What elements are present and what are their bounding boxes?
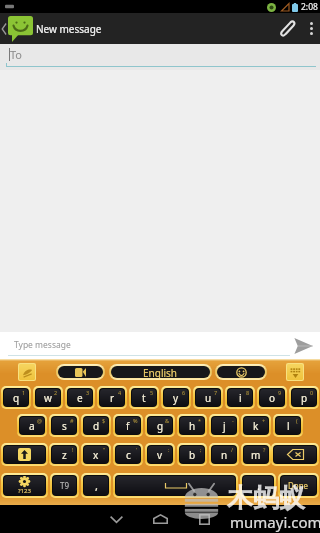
staticText: ? <box>263 446 266 453</box>
staticText: * <box>198 417 202 424</box>
staticText: i <box>239 391 242 405</box>
button[interactable]: T9 <box>53 476 76 495</box>
button[interactable]: New message <box>0 13 102 44</box>
staticText: f <box>126 419 130 433</box>
staticText: ' <box>136 446 138 453</box>
button[interactable]: r <box>100 389 124 406</box>
button[interactable]: Symbols <box>4 476 45 495</box>
button[interactable]: Attach <box>272 14 302 44</box>
button[interactable]: g <box>148 417 172 434</box>
button[interactable]: s <box>52 417 76 434</box>
staticText: s <box>62 419 67 433</box>
button[interactable]: d <box>84 417 108 434</box>
button[interactable]: t <box>132 389 156 406</box>
staticText: ! <box>72 446 74 453</box>
staticText: $ <box>102 417 106 424</box>
button[interactable]: Comma <box>84 476 108 495</box>
staticText: % <box>133 417 138 424</box>
button[interactable]: i <box>228 389 252 406</box>
staticText: z <box>62 448 67 462</box>
button[interactable]: Home <box>138 505 182 533</box>
staticText: Done <box>288 480 309 491</box>
button[interactable]: y <box>164 389 188 406</box>
button[interactable]: Period <box>243 476 273 495</box>
button[interactable]: q <box>4 389 28 406</box>
staticText: k <box>253 419 259 433</box>
staticText: T9 <box>60 480 70 491</box>
staticText: y <box>173 391 179 405</box>
staticText: English <box>143 366 178 378</box>
staticText: 2:08 <box>301 1 318 13</box>
button[interactable]: More options <box>302 13 320 44</box>
button[interactable]: Send <box>290 333 316 359</box>
button[interactable]: u <box>196 389 220 406</box>
staticText: r <box>110 391 115 405</box>
staticText: ?123 <box>18 487 31 495</box>
button[interactable]: w <box>36 389 60 406</box>
staticText: 9 <box>278 389 282 396</box>
staticText: h <box>189 419 196 433</box>
button[interactable]: Backspace <box>274 446 316 463</box>
staticText: 6 <box>182 389 186 396</box>
button[interactable]: z <box>52 446 76 463</box>
staticText: q <box>13 391 20 405</box>
button[interactable]: Recent apps <box>182 505 226 533</box>
staticText: b <box>189 448 196 462</box>
staticText: 0 <box>310 389 314 396</box>
staticText: o <box>269 391 276 405</box>
staticText: 5 <box>150 389 154 396</box>
button[interactable]: Space <box>116 476 235 495</box>
button[interactable]: j <box>212 417 236 434</box>
button[interactable]: o <box>260 389 284 406</box>
button[interactable]: Voice input <box>58 366 103 378</box>
staticText: w <box>44 391 52 405</box>
staticText: # <box>70 417 74 424</box>
button[interactable]: English <box>111 366 210 378</box>
button[interactable]: c <box>116 446 140 463</box>
button[interactable]: a <box>20 417 44 434</box>
button[interactable]: n <box>212 446 236 463</box>
staticText: mumayi.com <box>230 512 320 532</box>
staticText: : <box>168 446 170 453</box>
staticText: Type message <box>14 339 71 351</box>
staticText: + <box>262 417 266 424</box>
button[interactable]: p <box>292 389 316 406</box>
button[interactable]: Done <box>281 476 316 495</box>
staticText: m <box>251 448 261 462</box>
staticText: " <box>103 446 106 453</box>
button[interactable]: l <box>276 417 300 434</box>
staticText: 4 <box>118 389 122 396</box>
staticText: & <box>165 417 170 424</box>
staticText: ; <box>200 446 202 453</box>
staticText: / <box>231 446 234 453</box>
button[interactable]: m <box>244 446 268 463</box>
staticText: a <box>29 419 35 433</box>
staticText: , <box>95 478 98 493</box>
staticText: . <box>257 478 260 493</box>
button[interactable]: Hide keyboard <box>94 505 138 533</box>
staticText: n <box>221 448 228 462</box>
staticText: To <box>10 47 23 62</box>
button[interactable]: k <box>244 417 268 434</box>
button[interactable]: h <box>180 417 204 434</box>
staticText: e <box>77 391 83 405</box>
staticText: 3 <box>86 389 90 396</box>
staticText: p <box>301 391 308 405</box>
button[interactable]: Shift <box>4 446 45 463</box>
staticText: - <box>232 417 234 424</box>
button[interactable]: Change theme <box>19 364 35 380</box>
button[interactable]: Emoji <box>217 366 265 378</box>
staticText: l <box>287 419 290 433</box>
staticText: New message <box>36 22 102 36</box>
staticText: c <box>126 448 131 462</box>
staticText: g <box>157 419 164 433</box>
button[interactable]: Hide keyboard <box>287 364 303 380</box>
button[interactable]: f <box>116 417 140 434</box>
button[interactable]: v <box>148 446 172 463</box>
button[interactable]: x <box>84 446 108 463</box>
button[interactable]: b <box>180 446 204 463</box>
staticText: ( <box>296 417 298 424</box>
staticText: x <box>93 448 99 462</box>
staticText: 2 <box>54 389 58 396</box>
button[interactable]: e <box>68 389 92 406</box>
